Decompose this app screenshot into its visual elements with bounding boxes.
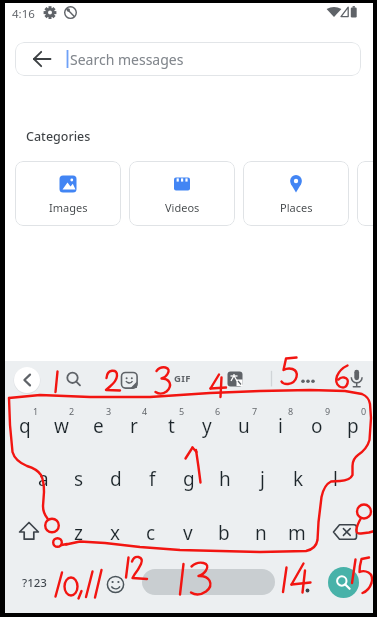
button[interactable] [142, 569, 275, 595]
staticText: a [38, 466, 49, 492]
button[interactable]: n [243, 516, 279, 550]
button[interactable] [357, 161, 377, 226]
staticText: Videos [165, 200, 200, 215]
button[interactable]: m [279, 516, 315, 550]
staticText: GIF [174, 372, 191, 385]
button[interactable] [295, 572, 319, 596]
button[interactable]: x [97, 516, 133, 550]
staticText: l [333, 466, 338, 492]
staticText: v [183, 520, 193, 546]
button[interactable] [14, 367, 40, 393]
button[interactable]: q [7, 409, 43, 443]
staticText: 2 [69, 405, 75, 417]
button[interactable]: c [133, 516, 169, 550]
button[interactable]: s [61, 462, 97, 496]
staticText: g [183, 466, 195, 492]
button[interactable] [328, 567, 359, 598]
button[interactable]: Images [15, 161, 121, 226]
button[interactable]: v [170, 516, 206, 550]
button[interactable]: p [335, 409, 371, 443]
button[interactable] [296, 369, 320, 393]
staticText: b [218, 520, 230, 546]
button[interactable]: k [280, 462, 316, 496]
button[interactable]: GIF [168, 368, 196, 388]
button[interactable]: j [244, 462, 280, 496]
button[interactable]: r [116, 409, 152, 443]
button[interactable]: f [134, 462, 170, 496]
staticText: j [260, 466, 265, 492]
staticText: i [278, 413, 283, 439]
button[interactable]: ?123 [15, 572, 53, 594]
button[interactable]: a [25, 462, 61, 496]
button[interactable]: Videos [129, 161, 235, 226]
staticText: n [255, 520, 267, 546]
button[interactable] [117, 367, 141, 391]
staticText: s [74, 466, 84, 492]
button[interactable]: g [171, 462, 207, 496]
button[interactable] [223, 367, 247, 391]
staticText: Search messages [70, 50, 184, 69]
staticText: Places [280, 200, 313, 215]
staticText: 4:16 [12, 6, 35, 22]
staticText: q [19, 413, 31, 439]
staticText: z [74, 520, 83, 546]
staticText: f [149, 466, 156, 492]
staticText: d [110, 466, 122, 492]
staticText: k [293, 466, 304, 492]
staticText: r [130, 413, 138, 439]
button[interactable]: e [80, 409, 116, 443]
staticText: p [347, 413, 359, 439]
staticText: 8 [288, 405, 294, 417]
button[interactable] [344, 367, 368, 391]
staticText: m [288, 520, 306, 546]
button[interactable]: Search messages [15, 42, 361, 76]
button[interactable]: Places [243, 161, 349, 226]
button[interactable]: y [189, 409, 225, 443]
button[interactable]: t [153, 409, 189, 443]
staticText: 3 [106, 405, 112, 417]
button[interactable]: l [317, 462, 353, 496]
button[interactable]: h [207, 462, 243, 496]
staticText: o [311, 413, 323, 439]
staticText: u [238, 413, 250, 439]
staticText: e [93, 413, 104, 439]
button[interactable] [61, 367, 85, 391]
staticText: 1 [33, 405, 39, 417]
button[interactable]: o [299, 409, 335, 443]
button[interactable]: z [60, 516, 96, 550]
button[interactable]: d [98, 462, 134, 496]
staticText: x [110, 520, 121, 546]
button[interactable] [104, 572, 128, 596]
button[interactable]: u [226, 409, 262, 443]
staticText: 7 [252, 405, 258, 417]
button[interactable]: b [206, 516, 242, 550]
staticText: c [146, 520, 156, 546]
staticText: 0 [361, 405, 367, 417]
staticText: Categories [26, 128, 91, 145]
staticText: w [54, 413, 69, 439]
staticText: 6 [215, 405, 221, 417]
staticText: y [202, 413, 212, 439]
staticText: h [219, 466, 231, 492]
staticText: 9 [325, 405, 331, 417]
button[interactable]: w [43, 409, 79, 443]
button[interactable]: i [262, 409, 298, 443]
staticText: 4 [142, 405, 148, 417]
staticText: Images [49, 200, 88, 215]
staticText: ?123 [22, 575, 47, 591]
staticText: 5 [179, 405, 185, 417]
staticText: t [168, 413, 175, 439]
